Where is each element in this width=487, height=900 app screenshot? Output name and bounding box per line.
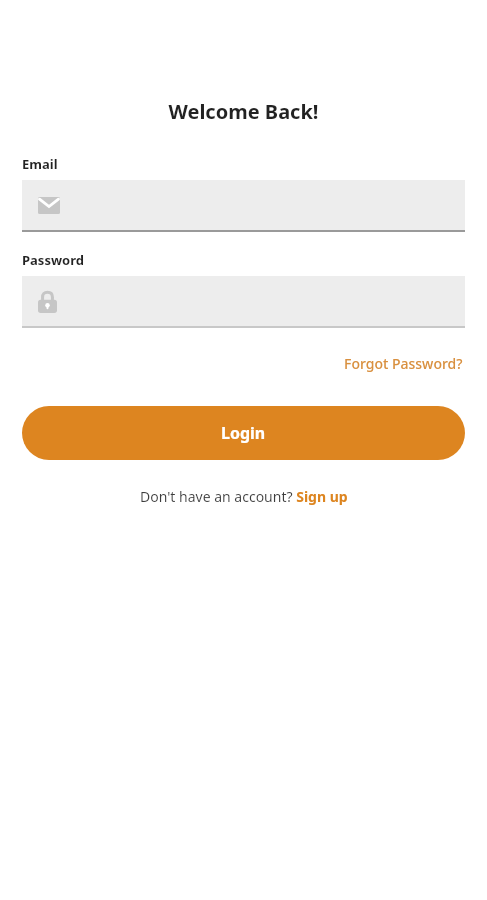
button[interactable]: Password input field <box>22 276 465 328</box>
button[interactable]: Login <box>22 406 465 460</box>
staticText: Email <box>22 155 58 173</box>
button[interactable]: Email input field <box>22 180 465 232</box>
button[interactable]: Forgot Password? <box>342 351 465 376</box>
staticText: Don't have an account? Sign up <box>140 487 348 506</box>
button[interactable]: Don't have an account? Sign up <box>138 484 350 509</box>
staticText: Welcome Back! <box>22 98 465 125</box>
staticText: Password <box>22 251 84 269</box>
staticText: Login <box>221 422 266 444</box>
staticText: Forgot Password? <box>344 354 463 373</box>
